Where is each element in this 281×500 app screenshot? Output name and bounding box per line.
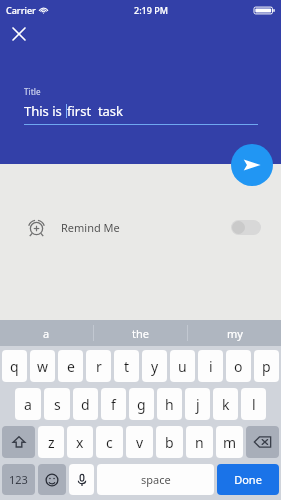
staticText: x (76, 433, 84, 452)
button[interactable]: q (2, 350, 27, 382)
staticText: my (227, 326, 243, 341)
button[interactable]: b (156, 426, 183, 458)
button[interactable]: h (157, 388, 182, 420)
staticText: n (195, 433, 204, 452)
staticText: 2:19 PM (134, 4, 168, 16)
button[interactable]: k (213, 388, 238, 420)
button[interactable]: Remind Me toggle (231, 220, 261, 235)
button[interactable]: Close (8, 23, 30, 45)
staticText: a (43, 326, 50, 341)
button[interactable]: Shift (2, 426, 35, 458)
button[interactable]: a (15, 388, 41, 420)
button[interactable]: v (126, 426, 153, 458)
button[interactable]: y (142, 350, 167, 382)
staticText: o (234, 357, 243, 376)
staticText: k (222, 395, 230, 414)
button[interactable]: p (254, 350, 279, 382)
button[interactable]: 123 (2, 464, 35, 495)
staticText: c (106, 433, 113, 452)
staticText: v (136, 433, 144, 452)
button[interactable]: j (185, 388, 210, 420)
staticText: the (132, 326, 149, 341)
staticText: g (137, 395, 146, 414)
staticText: Done (234, 472, 262, 487)
staticText: Title (24, 86, 41, 97)
staticText: e (67, 357, 75, 376)
button[interactable]: w (30, 350, 55, 382)
staticText: space (141, 472, 171, 487)
staticText: i (209, 357, 213, 376)
button[interactable]: i (198, 350, 223, 382)
staticText: s (54, 395, 61, 414)
button[interactable]: m (216, 426, 243, 458)
staticText: This is (24, 102, 66, 120)
button[interactable]: z (38, 426, 64, 458)
staticText: q (10, 357, 19, 376)
staticText: first task (67, 102, 124, 120)
button[interactable]: c (96, 426, 123, 458)
button[interactable]: x (67, 426, 93, 458)
staticText: h (165, 395, 174, 414)
staticText: m (223, 433, 237, 452)
button[interactable]: a (0, 320, 93, 346)
button[interactable]: r (86, 350, 111, 382)
staticText: p (262, 357, 271, 376)
staticText: Remind Me (61, 220, 120, 235)
staticText: r (96, 357, 102, 376)
staticText: z (48, 433, 55, 452)
button[interactable]: Voice input (69, 464, 94, 495)
staticText: w (37, 357, 49, 376)
button[interactable]: t (114, 350, 139, 382)
button[interactable]: s (44, 388, 70, 420)
staticText: a (24, 395, 32, 414)
button[interactable]: l (241, 388, 266, 420)
button[interactable]: Remind Me (0, 205, 281, 249)
staticText: u (178, 357, 187, 376)
button[interactable]: f (101, 388, 126, 420)
staticText: l (252, 395, 256, 414)
button[interactable]: n (186, 426, 213, 458)
staticText: b (165, 433, 174, 452)
staticText: t (124, 357, 130, 376)
button[interactable]: u (170, 350, 195, 382)
button[interactable]: Done (217, 464, 279, 495)
staticText: 123 (9, 472, 28, 487)
button[interactable]: e (58, 350, 83, 382)
staticText: j (196, 395, 200, 414)
button[interactable]: g (129, 388, 154, 420)
button[interactable]: Backspace (246, 426, 279, 458)
staticText: f (111, 395, 116, 414)
staticText: y (151, 357, 159, 376)
button[interactable]: Send (231, 144, 273, 186)
button[interactable]: Emoji (38, 464, 66, 495)
button[interactable]: the (94, 320, 187, 346)
button[interactable]: d (73, 388, 98, 420)
button[interactable]: o (226, 350, 251, 382)
button[interactable]: space (97, 464, 214, 495)
button[interactable]: my (188, 320, 281, 346)
staticText: Carrier (6, 4, 36, 16)
staticText: d (81, 395, 90, 414)
